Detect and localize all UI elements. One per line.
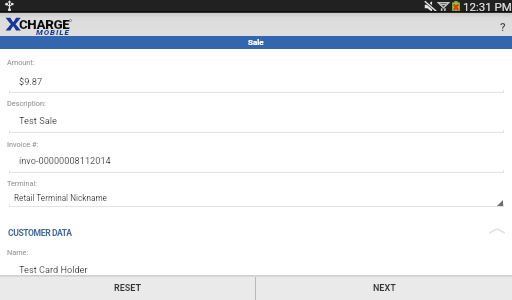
staticText: Amount:	[7, 58, 35, 67]
button[interactable]: RESET	[0, 277, 255, 300]
staticText: Test Sale	[19, 115, 57, 126]
staticText: MOBILE	[36, 28, 70, 37]
staticText: Invoice #:	[7, 140, 39, 149]
other: Select terminal	[497, 200, 503, 206]
staticText: 12:31 PM	[463, 0, 512, 11]
staticText: Test Card Holder	[19, 264, 88, 275]
staticText: Description:	[7, 99, 46, 108]
staticText: Retail Terminal Nickname	[14, 193, 107, 203]
staticText: NEXT	[373, 283, 396, 294]
staticText: CUSTOMER DATA	[8, 228, 72, 238]
staticText: Terminal:	[7, 179, 38, 188]
staticText: invo-00000008112014	[19, 155, 111, 166]
button[interactable]: Collapse customer data	[481, 222, 512, 240]
staticText: Name:	[7, 248, 29, 257]
button[interactable]: NEXT	[256, 277, 512, 300]
staticText: CHARGE	[19, 17, 70, 33]
staticText: Sale	[248, 38, 264, 47]
button[interactable]: Help	[494, 15, 512, 37]
staticText: ?	[500, 20, 506, 33]
staticText: RESET	[114, 283, 142, 294]
staticText: $9.87	[19, 76, 43, 87]
